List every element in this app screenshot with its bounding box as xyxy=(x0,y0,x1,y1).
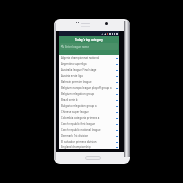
staticText: Czech republic first league xyxy=(61,122,115,126)
staticText: Today's top category xyxy=(75,38,103,42)
button[interactable]: Brazil serie b xyxy=(59,97,119,103)
button[interactable]: Argentina superliga xyxy=(59,61,119,67)
staticText: England championship xyxy=(61,145,115,149)
staticText: Argentina superliga xyxy=(61,62,115,66)
staticText: Denmark 1st division xyxy=(61,134,115,138)
staticText: El salvador primera division xyxy=(61,140,115,144)
staticText: Australia league Final stage xyxy=(61,68,115,72)
button[interactable]: Belgium relegation group xyxy=(59,91,119,97)
button[interactable]: Denmark 1st division xyxy=(59,133,119,139)
button[interactable]: Austria erste liga xyxy=(59,73,119,79)
button[interactable]: Enter league name xyxy=(60,43,118,50)
button[interactable]: Belgium europa league playoff group a xyxy=(59,85,119,91)
button[interactable]: Chinese super league xyxy=(59,109,119,115)
button[interactable]: Home xyxy=(85,156,101,160)
staticText: Brazil serie b xyxy=(61,98,115,102)
staticText: Austria erste liga xyxy=(61,74,115,78)
staticText: Belgium relegation group xyxy=(61,92,115,96)
button[interactable]: Bulgaria relegation group a xyxy=(59,103,119,109)
staticText: Belgium europa league playoff group a xyxy=(61,86,115,90)
staticText: Czech republic national league xyxy=(61,128,115,132)
staticText: Bulgaria relegation group a xyxy=(61,104,115,108)
staticText: Chinese super league xyxy=(61,110,115,114)
staticText: Algeria championnat national xyxy=(61,56,115,60)
button[interactable]: Australia league Final stage xyxy=(59,67,119,73)
button[interactable]: Algeria championnat national xyxy=(59,55,119,61)
staticText: Bahrain premier league xyxy=(61,80,115,84)
button[interactable]: Colombia categoria primera a xyxy=(59,115,119,121)
button[interactable]: Czech republic national league xyxy=(59,127,119,133)
staticText: Enter league name xyxy=(65,45,89,49)
staticText: Colombia categoria primera a xyxy=(61,116,115,120)
button[interactable]: Bahrain premier league xyxy=(59,79,119,85)
button[interactable]: El salvador primera division xyxy=(59,139,119,145)
button[interactable]: England championship xyxy=(59,145,119,149)
button[interactable]: Czech republic first league xyxy=(59,121,119,127)
